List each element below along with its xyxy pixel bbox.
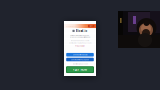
button[interactable]: Continue with Google [66, 53, 94, 57]
staticText: Already have an account? [70, 40, 89, 41]
staticText: Privacy policy [75, 45, 85, 47]
staticText: Continue with Google [72, 54, 87, 56]
button[interactable]: Continue to create a free account [69, 42, 91, 44]
staticText: Log in or sign up to save your progress … [69, 35, 90, 38]
staticText: SPECIAL OFFER [66, 25, 77, 27]
staticText: GET [90, 25, 93, 27]
staticText: Continue to create a free account [69, 42, 91, 44]
staticText: Continue with Facebook [71, 59, 89, 60]
button[interactable]: PLAY NOW [66, 66, 94, 73]
staticText: Play without an account [72, 63, 87, 65]
staticText: Bloxd.io [75, 29, 87, 33]
staticText: PLAY NOW [72, 68, 87, 71]
button[interactable]: Claim special offer [88, 25, 94, 27]
button[interactable]: Continue with Facebook [66, 58, 94, 61]
button[interactable]: Privacy policy [75, 45, 85, 47]
